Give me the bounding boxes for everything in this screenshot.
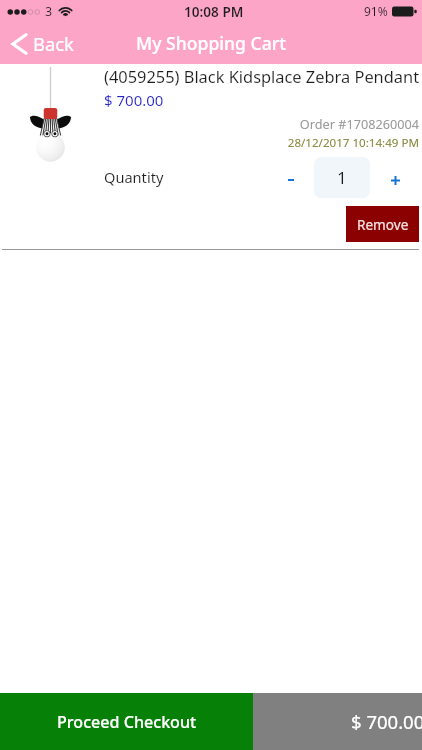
button[interactable]: Proceed Checkout xyxy=(0,693,253,750)
staticText: (4059255) Black Kidsplace Zebra Pendant xyxy=(104,65,419,87)
staticText: Remove xyxy=(357,215,409,234)
staticText: 3 xyxy=(45,3,53,20)
staticText: Proceed Checkout xyxy=(57,711,197,733)
staticText: Back xyxy=(33,31,74,56)
button[interactable]: Increase quantity xyxy=(381,159,410,195)
staticText: 1 xyxy=(337,166,347,189)
staticText: $ 700.00 xyxy=(104,90,164,110)
button[interactable]: 1 xyxy=(314,157,370,198)
staticText: $ 700.00 xyxy=(351,709,422,734)
staticText: Order #1708260004 xyxy=(104,115,419,132)
button[interactable]: Back xyxy=(0,27,86,60)
button[interactable]: $ 700.00 xyxy=(253,693,422,750)
staticText: Quantity xyxy=(104,167,164,187)
button[interactable]: Decrease quantity xyxy=(276,159,306,195)
staticText: 10:08 PM xyxy=(184,2,244,21)
staticText: 28/12/2017 10:14:49 PM xyxy=(104,135,419,151)
staticText: My Shopping Cart xyxy=(136,31,286,55)
staticText: 91% xyxy=(364,3,388,19)
button[interactable]: Remove xyxy=(346,206,419,242)
